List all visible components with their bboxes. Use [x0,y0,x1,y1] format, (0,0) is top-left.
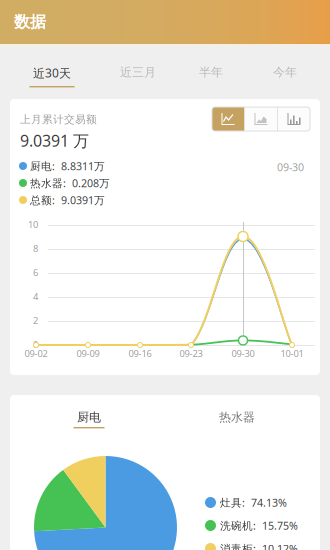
staticText: 热水器: 0.208万 [30,176,110,190]
button[interactable]: 今年 [244,44,326,88]
staticText: 灶具: 74.13% [220,495,287,510]
staticText: 近三月 [120,65,156,80]
staticText: 8 [33,242,38,255]
button[interactable]: 半年 [170,44,252,88]
staticText: 数据 [14,12,46,32]
staticText: 今年 [273,65,297,80]
staticText: 0 [33,338,38,351]
button[interactable]: Area chart [245,107,277,131]
staticText: 半年 [199,65,223,80]
staticText: 厨电: 8.8311万 [30,159,105,173]
staticText: 总额: 9.0391万 [30,193,105,207]
staticText: 09-02 [24,347,47,360]
button[interactable]: 近30天 [11,44,93,88]
staticText: 近30天 [33,65,71,81]
staticText: 09-30 [277,160,304,174]
button[interactable]: Line chart [212,107,244,131]
staticText: 09-30 [231,347,254,360]
staticText: 09-16 [128,347,151,360]
staticText: 4 [33,290,38,303]
staticText: 10-01 [280,347,303,360]
staticText: 10 [28,218,38,231]
staticText: 2 [33,314,38,327]
staticText: 热水器 [219,410,255,425]
staticText: 09-23 [179,347,202,360]
staticText: 消毒柜: 10.12% [220,541,298,550]
button[interactable]: 热水器 [187,399,287,433]
staticText: 厨电 [77,410,101,425]
button[interactable]: 近三月 [97,44,179,88]
staticText: 上月累计交易额 [20,113,97,126]
staticText: 09-09 [76,347,99,360]
staticText: 9.0391 万 [20,130,89,151]
staticText: 洗碗机: 15.75% [220,518,298,533]
button[interactable]: 厨电 [39,399,139,433]
button[interactable]: Bar chart [278,107,310,131]
staticText: 6 [33,266,38,279]
